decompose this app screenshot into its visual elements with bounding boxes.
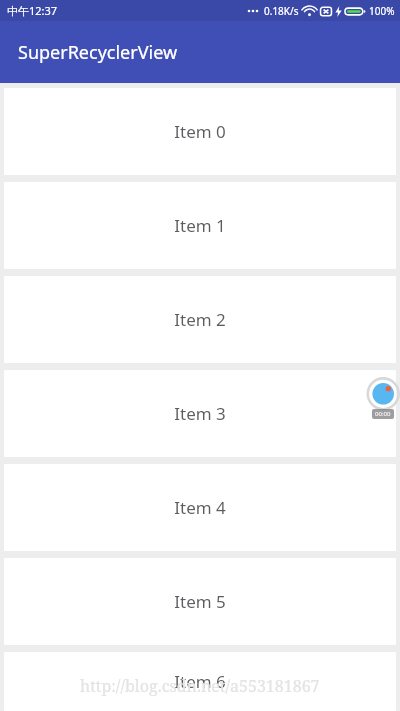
button[interactable]: Item 3 (4, 370, 396, 457)
staticText: Item 3 (174, 402, 226, 425)
button[interactable]: Item 4 (4, 464, 396, 551)
button[interactable]: Item 1 (4, 182, 396, 269)
button[interactable]: Item 0 (4, 88, 396, 175)
staticText: 中午12:37 (7, 3, 58, 18)
staticText: Item 1 (174, 214, 226, 237)
button[interactable]: Item 5 (4, 558, 396, 645)
staticText: Item 4 (174, 496, 226, 519)
staticText: 00:00 (375, 410, 391, 418)
staticText: http://blog.csdn.net/a553181867 (80, 675, 320, 697)
staticText: 0.18K/s (264, 4, 299, 18)
button[interactable]: Item 6 (4, 652, 396, 711)
button[interactable]: Item 2 (4, 276, 396, 363)
staticText: Item 6 (174, 670, 226, 693)
staticText: SuperRecyclerView (18, 40, 178, 65)
button[interactable]: Screen recorder (365, 377, 400, 419)
staticText: Item 2 (174, 308, 226, 331)
staticText: 100% (369, 4, 395, 18)
staticText: Item 5 (174, 590, 226, 613)
staticText: Item 0 (174, 120, 226, 143)
